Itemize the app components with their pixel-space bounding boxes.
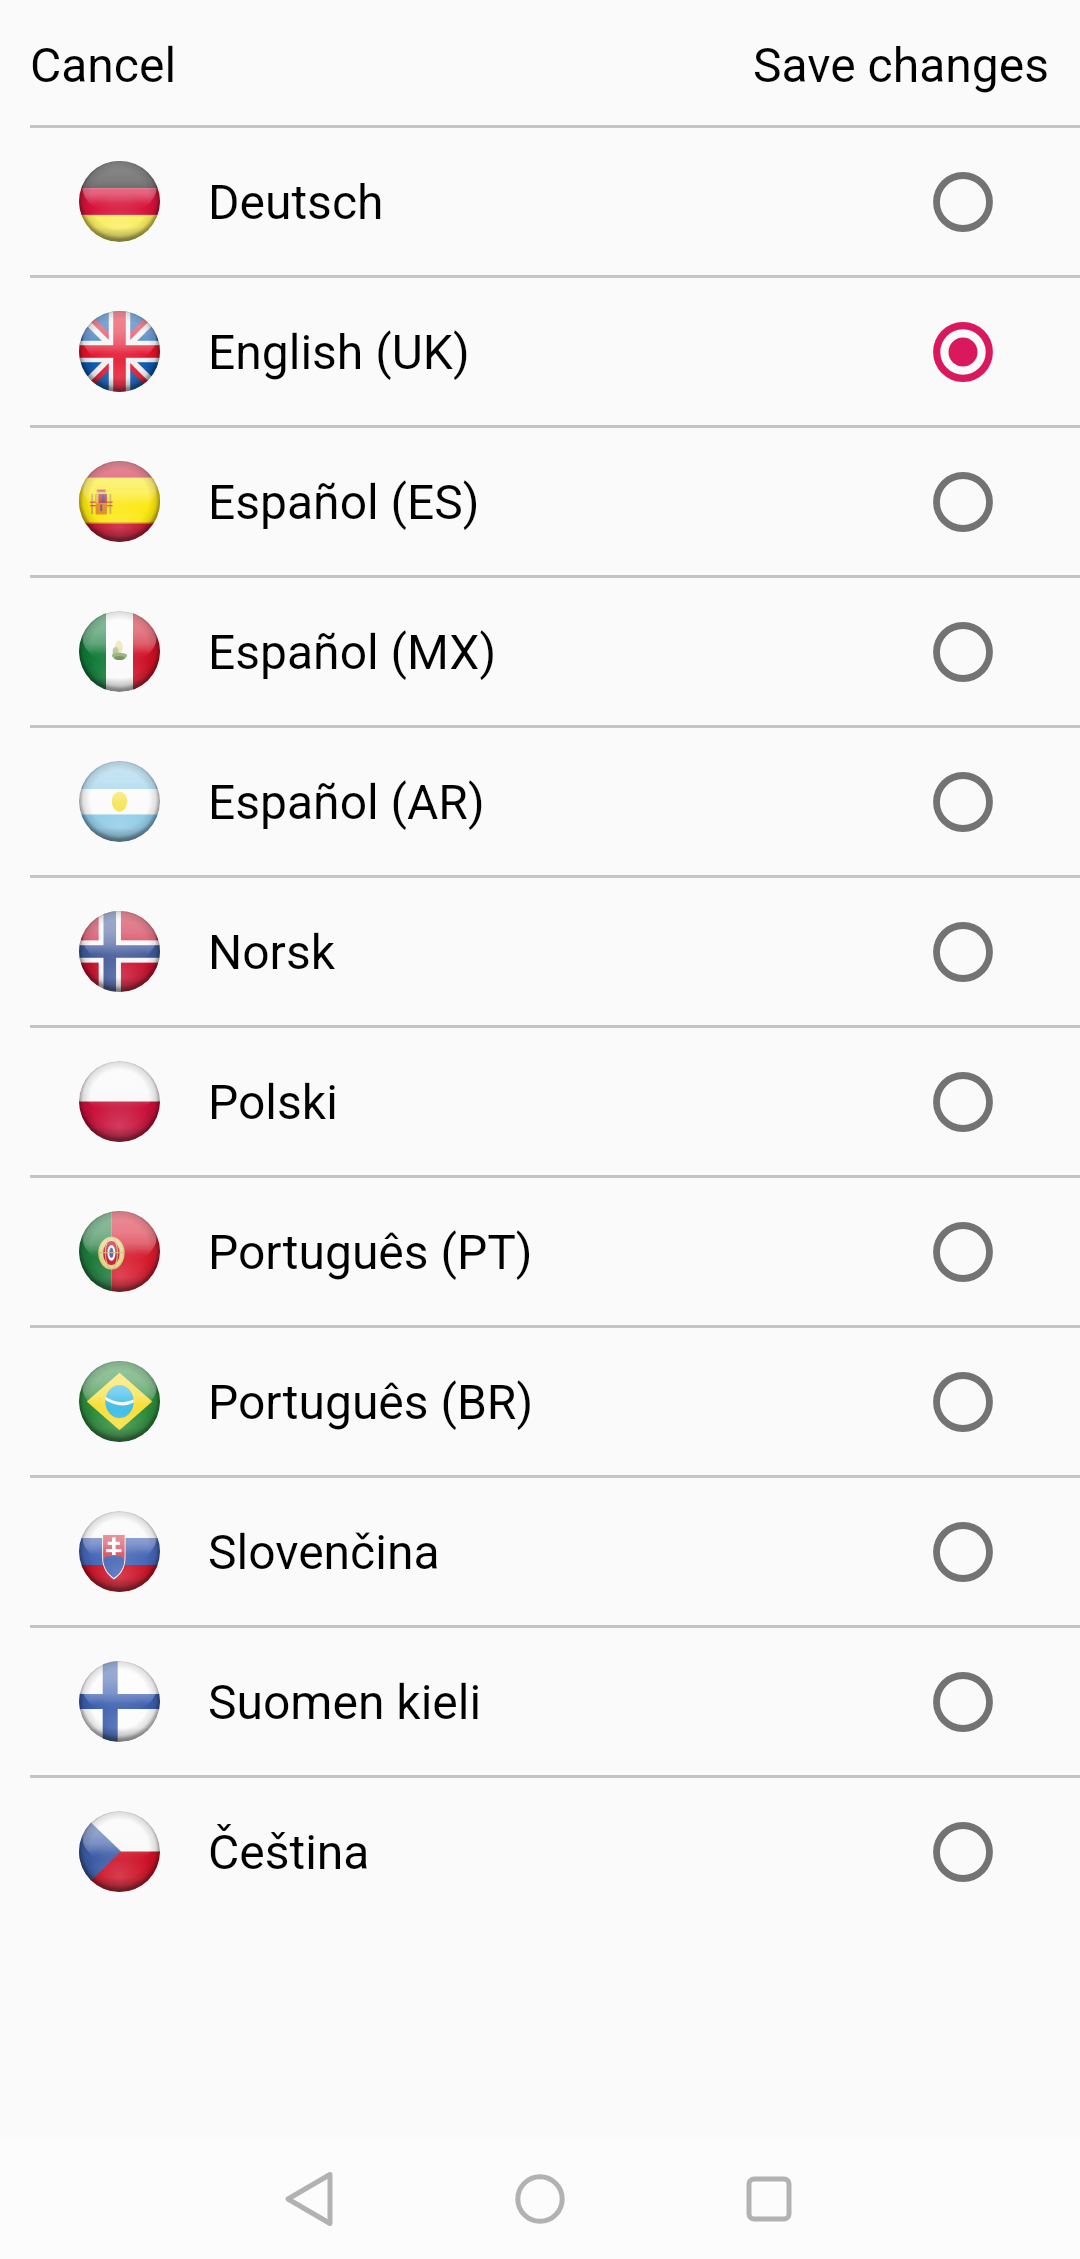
button[interactable]: Polski <box>0 1028 1080 1175</box>
staticText: Norsk <box>208 924 335 980</box>
staticText: English (UK) <box>208 324 470 380</box>
staticText: Español (MX) <box>208 624 497 680</box>
button[interactable]: English (UK) <box>0 278 1080 425</box>
staticText: Slovenčina <box>208 1524 440 1580</box>
button[interactable]: Save changes <box>723 0 1080 125</box>
staticText: Čeština <box>208 1824 370 1880</box>
button[interactable]: Português (PT) <box>0 1178 1080 1325</box>
staticText: Português (PT) <box>208 1224 533 1280</box>
button[interactable]: Deutsch <box>0 128 1080 275</box>
staticText: Português (BR) <box>208 1374 534 1430</box>
button[interactable]: Cancel <box>0 0 207 125</box>
staticText: Deutsch <box>208 174 384 230</box>
staticText: Español (AR) <box>208 774 485 830</box>
button[interactable]: Português (BR) <box>0 1328 1080 1475</box>
staticText: Polski <box>208 1074 338 1130</box>
staticText: Español (ES) <box>208 474 480 530</box>
staticText: Suomen kieli <box>208 1674 482 1730</box>
button[interactable]: Home <box>480 2139 600 2259</box>
button[interactable]: Español (ES) <box>0 428 1080 575</box>
button[interactable]: Čeština <box>0 1778 1080 1925</box>
staticText: Cancel <box>30 37 177 93</box>
button[interactable]: Recent apps <box>709 2139 829 2259</box>
button[interactable]: Español (MX) <box>0 578 1080 725</box>
button[interactable]: Suomen kieli <box>0 1628 1080 1775</box>
staticText: Save changes <box>753 37 1049 93</box>
button[interactable]: Español (AR) <box>0 728 1080 875</box>
button[interactable]: Back <box>249 2139 369 2259</box>
button[interactable]: Norsk <box>0 878 1080 1025</box>
button[interactable]: Slovenčina <box>0 1478 1080 1625</box>
